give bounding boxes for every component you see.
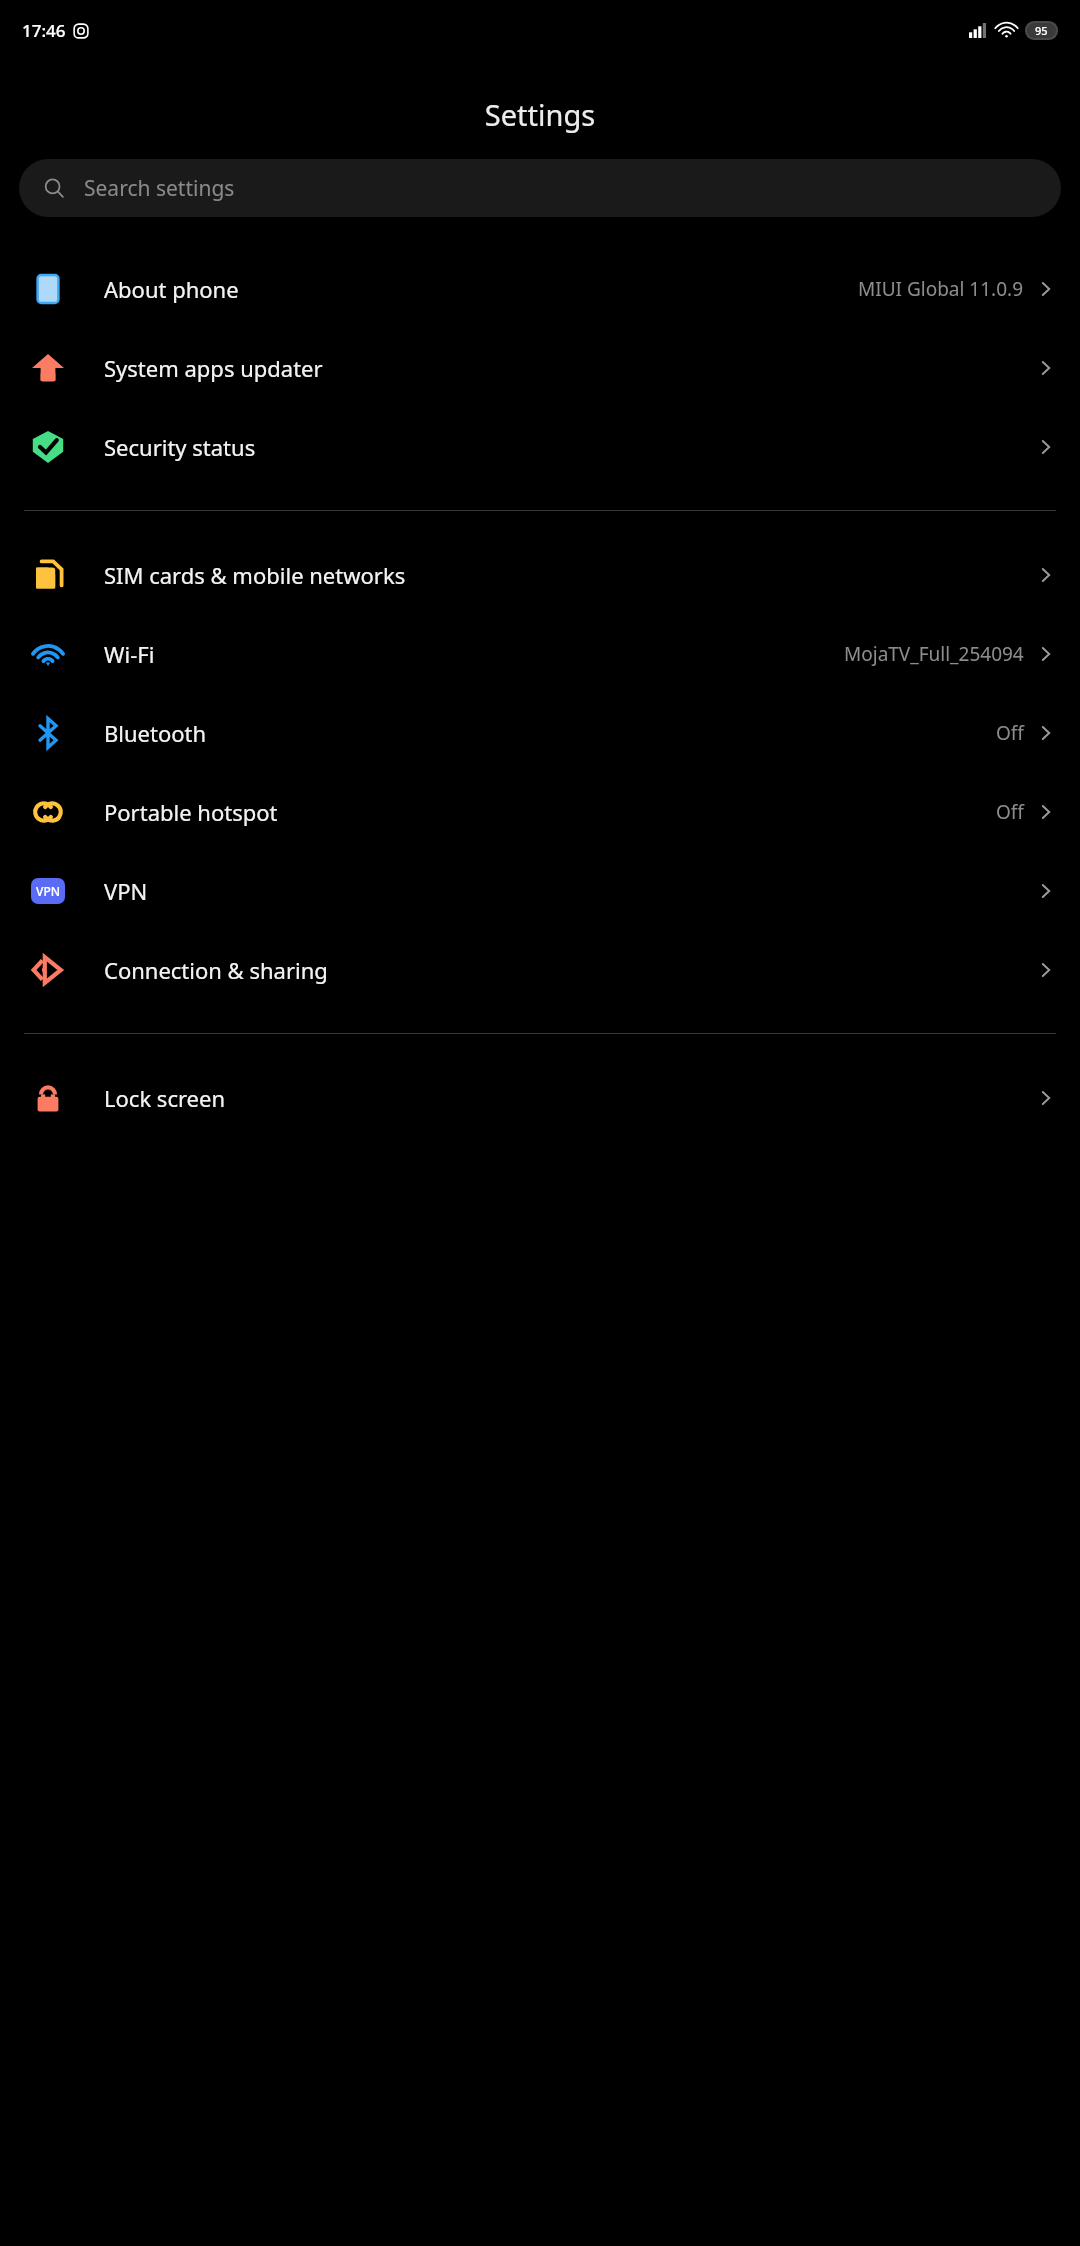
- button[interactable]: System apps updater: [0, 328, 1080, 407]
- staticText: VPN: [36, 883, 61, 899]
- button[interactable]: About phone: [0, 249, 1080, 328]
- staticText: Search settings: [84, 174, 235, 203]
- button[interactable]: Connection & sharing: [0, 930, 1080, 1009]
- staticText: Settings: [0, 95, 1080, 134]
- staticText: Off: [996, 720, 1024, 746]
- staticText: MIUI Global 11.0.9: [858, 276, 1024, 302]
- staticText: MojaTV_Full_254094: [844, 641, 1024, 667]
- staticText: System apps updater: [104, 353, 323, 383]
- staticText: SIM cards & mobile networks: [104, 560, 406, 590]
- staticText: About phone: [104, 274, 239, 304]
- staticText: Security status: [104, 432, 256, 462]
- staticText: Wi-Fi: [104, 639, 155, 669]
- button[interactable]: Security status: [0, 407, 1080, 486]
- staticText: VPN: [104, 876, 148, 906]
- button[interactable]: Portable hotspot: [0, 772, 1080, 851]
- button[interactable]: Lock screen: [0, 1058, 1080, 1137]
- button[interactable]: Search settings: [19, 159, 1061, 217]
- staticText: Portable hotspot: [104, 797, 278, 827]
- button[interactable]: Bluetooth: [0, 693, 1080, 772]
- staticText: Connection & sharing: [104, 955, 328, 985]
- staticText: 17:46: [22, 19, 66, 42]
- staticText: Bluetooth: [104, 718, 207, 748]
- staticText: 95: [1035, 23, 1048, 38]
- button[interactable]: SIM cards & mobile networks: [0, 535, 1080, 614]
- button[interactable]: Wi-Fi: [0, 614, 1080, 693]
- staticText: Lock screen: [104, 1083, 226, 1113]
- staticText: Off: [996, 799, 1024, 825]
- button[interactable]: VPN: [0, 851, 1080, 930]
